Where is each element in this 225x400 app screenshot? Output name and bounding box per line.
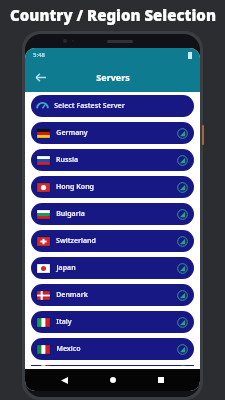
staticText: Denmark (56, 290, 88, 300)
staticText: Switzerland (56, 236, 96, 246)
staticText: Servers (96, 71, 130, 83)
staticText: Select Fastest Server (54, 101, 125, 111)
staticText: Hong Kong (56, 182, 94, 192)
button[interactable]: Japan (31, 257, 194, 279)
button[interactable]: Back (29, 66, 51, 88)
staticText: Russia (56, 155, 78, 165)
staticText: Mexico (56, 344, 81, 354)
button[interactable]: Select Fastest Server (31, 95, 194, 117)
button[interactable]: Back (54, 370, 74, 390)
button[interactable]: Mexico (31, 338, 194, 360)
button[interactable]: Germany (31, 122, 194, 144)
staticText: Germany (56, 128, 88, 138)
button[interactable]: Bulgaria (31, 203, 194, 225)
button[interactable]: Denmark (31, 284, 194, 306)
button[interactable]: Hong Kong (31, 176, 194, 198)
staticText: 5:48 (33, 51, 45, 59)
button[interactable]: Italy (31, 311, 194, 333)
staticText: Bulgaria (56, 209, 85, 219)
staticText: Country / Region Selection (10, 5, 216, 25)
button[interactable]: France (31, 365, 194, 366)
staticText: Japan (56, 263, 76, 273)
button[interactable]: Russia (31, 149, 194, 171)
staticText: Italy (56, 317, 72, 327)
button[interactable]: Recents (151, 370, 171, 390)
button[interactable]: Home (103, 370, 123, 390)
button[interactable]: Switzerland (31, 230, 194, 252)
